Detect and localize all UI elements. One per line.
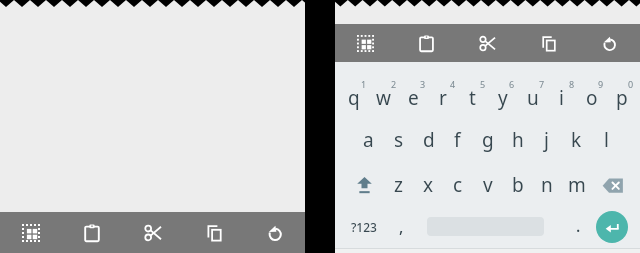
- button[interactable]: [342, 163, 386, 207]
- button[interactable]: v: [473, 163, 502, 207]
- button[interactable]: j: [532, 118, 561, 162]
- staticText: 0: [628, 78, 634, 90]
- staticText: x: [423, 172, 434, 198]
- staticText: m: [568, 172, 586, 198]
- staticText: 7: [539, 78, 545, 90]
- staticText: d: [423, 127, 435, 153]
- staticText: y: [498, 85, 508, 111]
- button[interactable]: l: [592, 118, 621, 162]
- staticText: z: [394, 172, 403, 198]
- staticText: j: [544, 127, 549, 153]
- staticText: 5: [480, 78, 486, 90]
- button[interactable]: ,: [387, 205, 415, 249]
- button[interactable]: n: [532, 163, 561, 207]
- button[interactable]: z: [384, 163, 413, 207]
- button[interactable]: [579, 24, 640, 62]
- button[interactable]: [183, 212, 244, 253]
- button[interactable]: q: [339, 75, 368, 121]
- staticText: h: [512, 127, 524, 153]
- button[interactable]: b: [503, 163, 532, 207]
- button[interactable]: e: [399, 75, 428, 121]
- button[interactable]: k: [562, 118, 591, 162]
- button[interactable]: o: [577, 75, 606, 121]
- button[interactable]: [122, 212, 183, 253]
- staticText: u: [527, 85, 539, 111]
- staticText: n: [541, 172, 553, 198]
- staticText: t: [469, 85, 476, 111]
- staticText: a: [363, 127, 374, 153]
- button[interactable]: [596, 211, 628, 243]
- staticText: 3: [420, 78, 426, 90]
- button[interactable]: t: [458, 75, 487, 121]
- staticText: 8: [569, 78, 575, 90]
- staticText: ,: [399, 216, 404, 238]
- button[interactable]: m: [562, 163, 591, 207]
- button[interactable]: g: [473, 118, 502, 162]
- button[interactable]: .: [564, 204, 592, 248]
- staticText: ?123: [351, 219, 377, 235]
- staticText: 1: [361, 78, 367, 90]
- staticText: 6: [509, 78, 515, 90]
- button[interactable]: ?123: [342, 205, 386, 249]
- button[interactable]: [396, 24, 457, 62]
- button[interactable]: h: [503, 118, 532, 162]
- button[interactable]: [518, 24, 579, 62]
- button[interactable]: w: [369, 75, 398, 121]
- button[interactable]: a: [354, 118, 383, 162]
- staticText: i: [559, 85, 564, 111]
- button[interactable]: [457, 24, 518, 62]
- button[interactable]: [335, 24, 396, 62]
- staticText: p: [616, 85, 628, 111]
- button[interactable]: s: [384, 118, 413, 162]
- staticText: 4: [450, 78, 456, 90]
- button[interactable]: r: [428, 75, 457, 121]
- staticText: .: [576, 215, 581, 237]
- button[interactable]: y: [488, 75, 517, 121]
- staticText: 9: [598, 78, 604, 90]
- staticText: 2: [391, 78, 397, 90]
- staticText: e: [408, 85, 419, 111]
- button[interactable]: [61, 212, 122, 253]
- button[interactable]: [591, 163, 635, 207]
- staticText: w: [376, 85, 391, 111]
- staticText: k: [571, 127, 582, 153]
- staticText: f: [454, 127, 461, 153]
- button[interactable]: f: [443, 118, 472, 162]
- staticText: c: [453, 172, 463, 198]
- staticText: g: [482, 127, 494, 153]
- staticText: o: [586, 85, 598, 111]
- button[interactable]: [244, 212, 305, 253]
- staticText: l: [604, 127, 609, 153]
- button[interactable]: i: [547, 75, 576, 121]
- staticText: r: [439, 85, 447, 111]
- button[interactable]: [0, 212, 61, 253]
- staticText: b: [512, 172, 524, 198]
- staticText: v: [483, 172, 493, 198]
- button[interactable]: p: [607, 75, 636, 121]
- button[interactable]: x: [414, 163, 443, 207]
- button[interactable]: d: [414, 118, 443, 162]
- button[interactable]: u: [518, 75, 547, 121]
- staticText: s: [394, 127, 404, 153]
- staticText: q: [348, 85, 360, 111]
- button[interactable]: c: [443, 163, 472, 207]
